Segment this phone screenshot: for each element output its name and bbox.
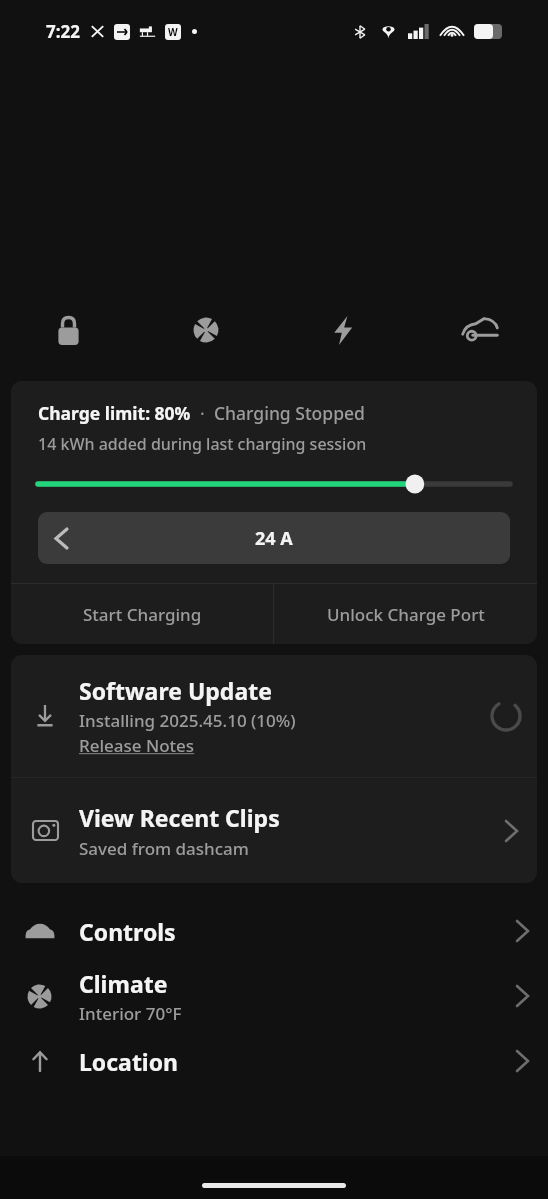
button[interactable]: Lock [0, 302, 137, 358]
button[interactable]: Climate [137, 302, 274, 358]
button[interactable]: Controls [0, 899, 548, 963]
staticText: Software Update [79, 675, 272, 706]
staticText: Charging Stopped [214, 401, 365, 425]
button[interactable]: Climate [0, 963, 548, 1029]
button[interactable]: Unlock Charge Port [274, 584, 537, 644]
button[interactable]: Charging [274, 302, 411, 358]
staticText: Charge limit: 80% [38, 401, 191, 425]
button[interactable]: 24 A [38, 512, 510, 564]
button[interactable]: Software Update [11, 655, 537, 777]
button[interactable]: Open trunk [411, 302, 548, 358]
staticText: Installing 2025.45.10 (10%) [79, 709, 296, 732]
staticText: Climate [79, 968, 168, 999]
staticText: W [168, 25, 178, 39]
staticText: Unlock Charge Port [327, 603, 485, 626]
button[interactable]: View Recent Clips [11, 778, 537, 883]
staticText: 7:22 [46, 20, 80, 43]
staticText: Location [79, 1046, 496, 1077]
staticText: Controls [79, 916, 496, 947]
staticText: 24 A [255, 526, 293, 551]
staticText: Interior 70°F [79, 1002, 182, 1025]
staticText: · [191, 401, 214, 425]
staticText: 14 kWh added during last charging sessio… [38, 433, 367, 455]
button[interactable]: Release Notes [79, 734, 195, 757]
staticText: Saved from dashcam [79, 837, 249, 860]
staticText: Start Charging [83, 603, 202, 626]
button[interactable]: Start Charging [11, 584, 273, 644]
button[interactable]: Charge limit slider [38, 474, 510, 494]
staticText: View Recent Clips [79, 802, 280, 833]
button[interactable]: Location [0, 1029, 548, 1093]
